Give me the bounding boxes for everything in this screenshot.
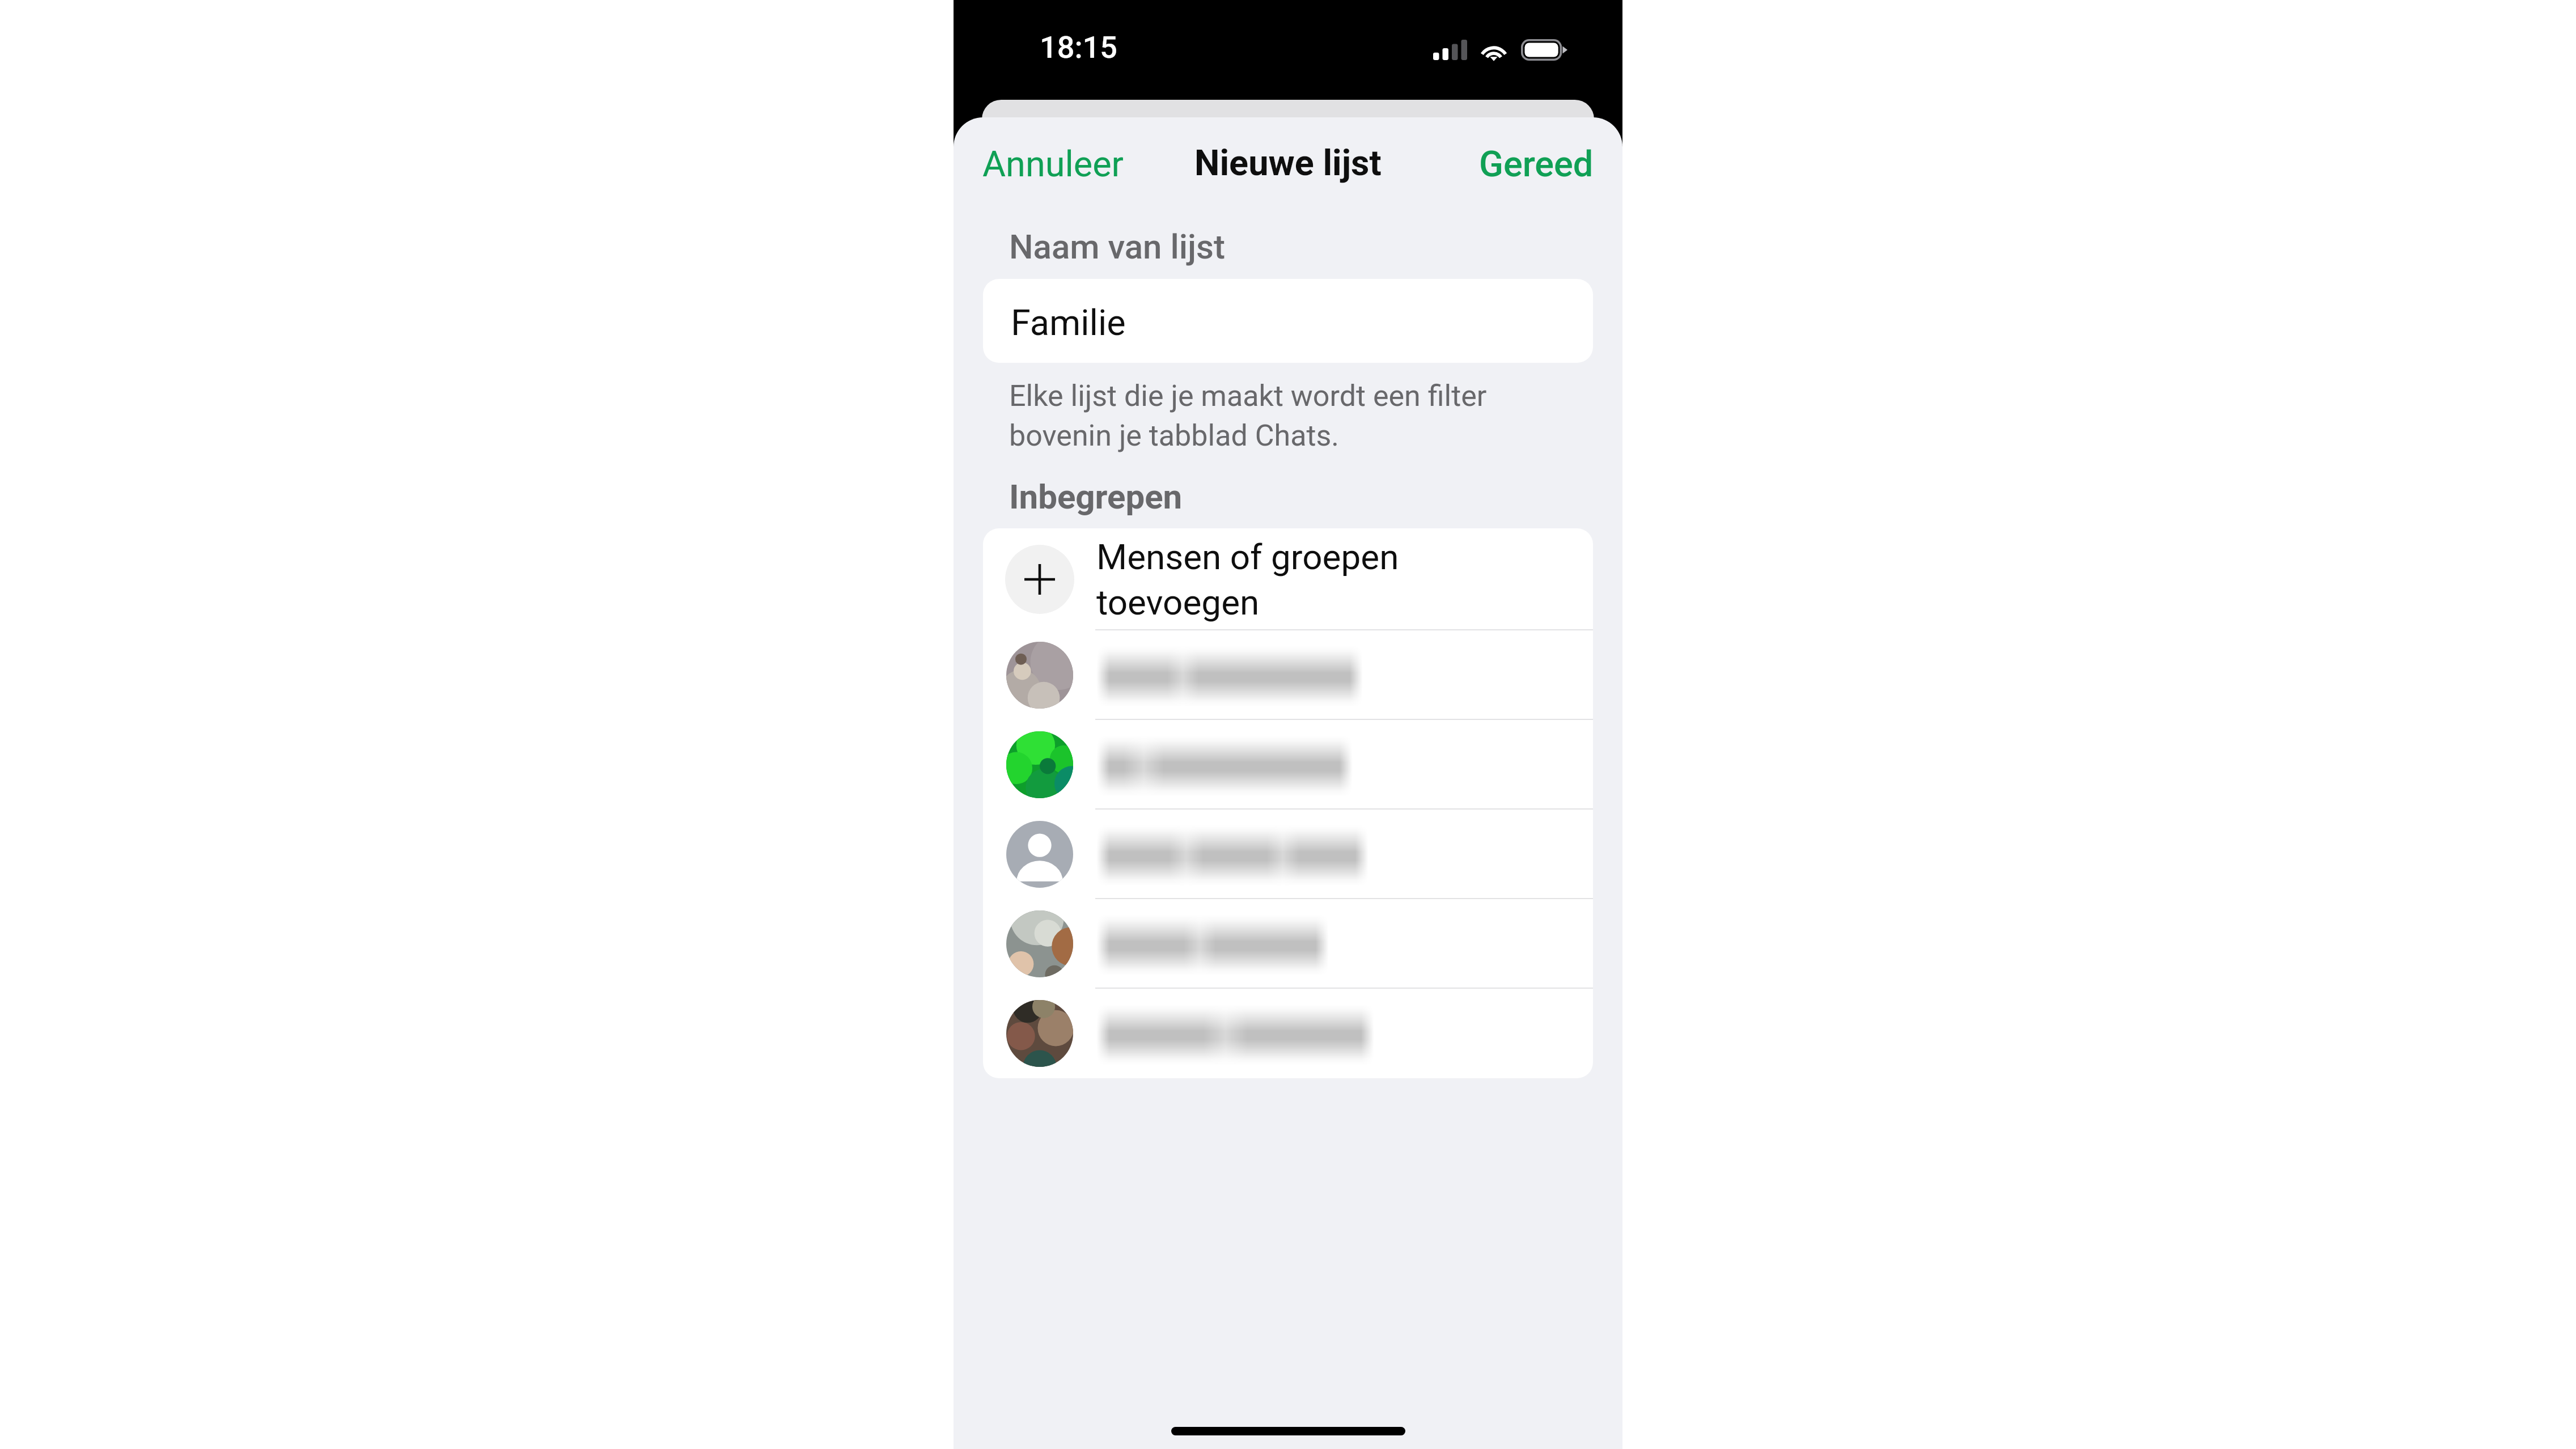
staticText: 18:15 [1040,29,1118,65]
other: Contact photo [1006,731,1073,798]
button[interactable]: Contact photo [983,630,1593,720]
staticText: Elke lijst die je maakt wordt een filter… [1009,379,1487,452]
other: Cellular signal [1433,40,1467,60]
button[interactable]: Mensen of groepen toevoegen [983,528,1593,630]
button[interactable]: Familie [983,279,1593,363]
staticText: Nieuwe lijst [1194,142,1382,184]
button[interactable]: Contact photo [983,989,1593,1078]
staticText: Inbegrepen [1009,477,1183,516]
other: Wi-Fi [1479,39,1509,61]
other: Contact photo [1006,642,1073,709]
button[interactable]: Annuleer [973,137,1133,192]
other: Battery [1521,39,1567,61]
staticText: Annuleer [982,143,1124,185]
staticText: Naam van lijst [1009,227,1225,266]
staticText: Gereed [1479,143,1594,185]
button[interactable]: Contact photo [983,899,1593,989]
button[interactable]: Contact photo [983,810,1593,899]
other: Contact photo [1006,1000,1073,1067]
button[interactable]: Gereed [1470,137,1603,192]
staticText: Mensen of groepen toevoegen [1096,536,1399,623]
staticText: Familie [1011,302,1126,344]
other: Contact photo [1006,910,1073,977]
other: Contact photo [1006,821,1073,888]
button[interactable]: Contact photo [983,720,1593,810]
